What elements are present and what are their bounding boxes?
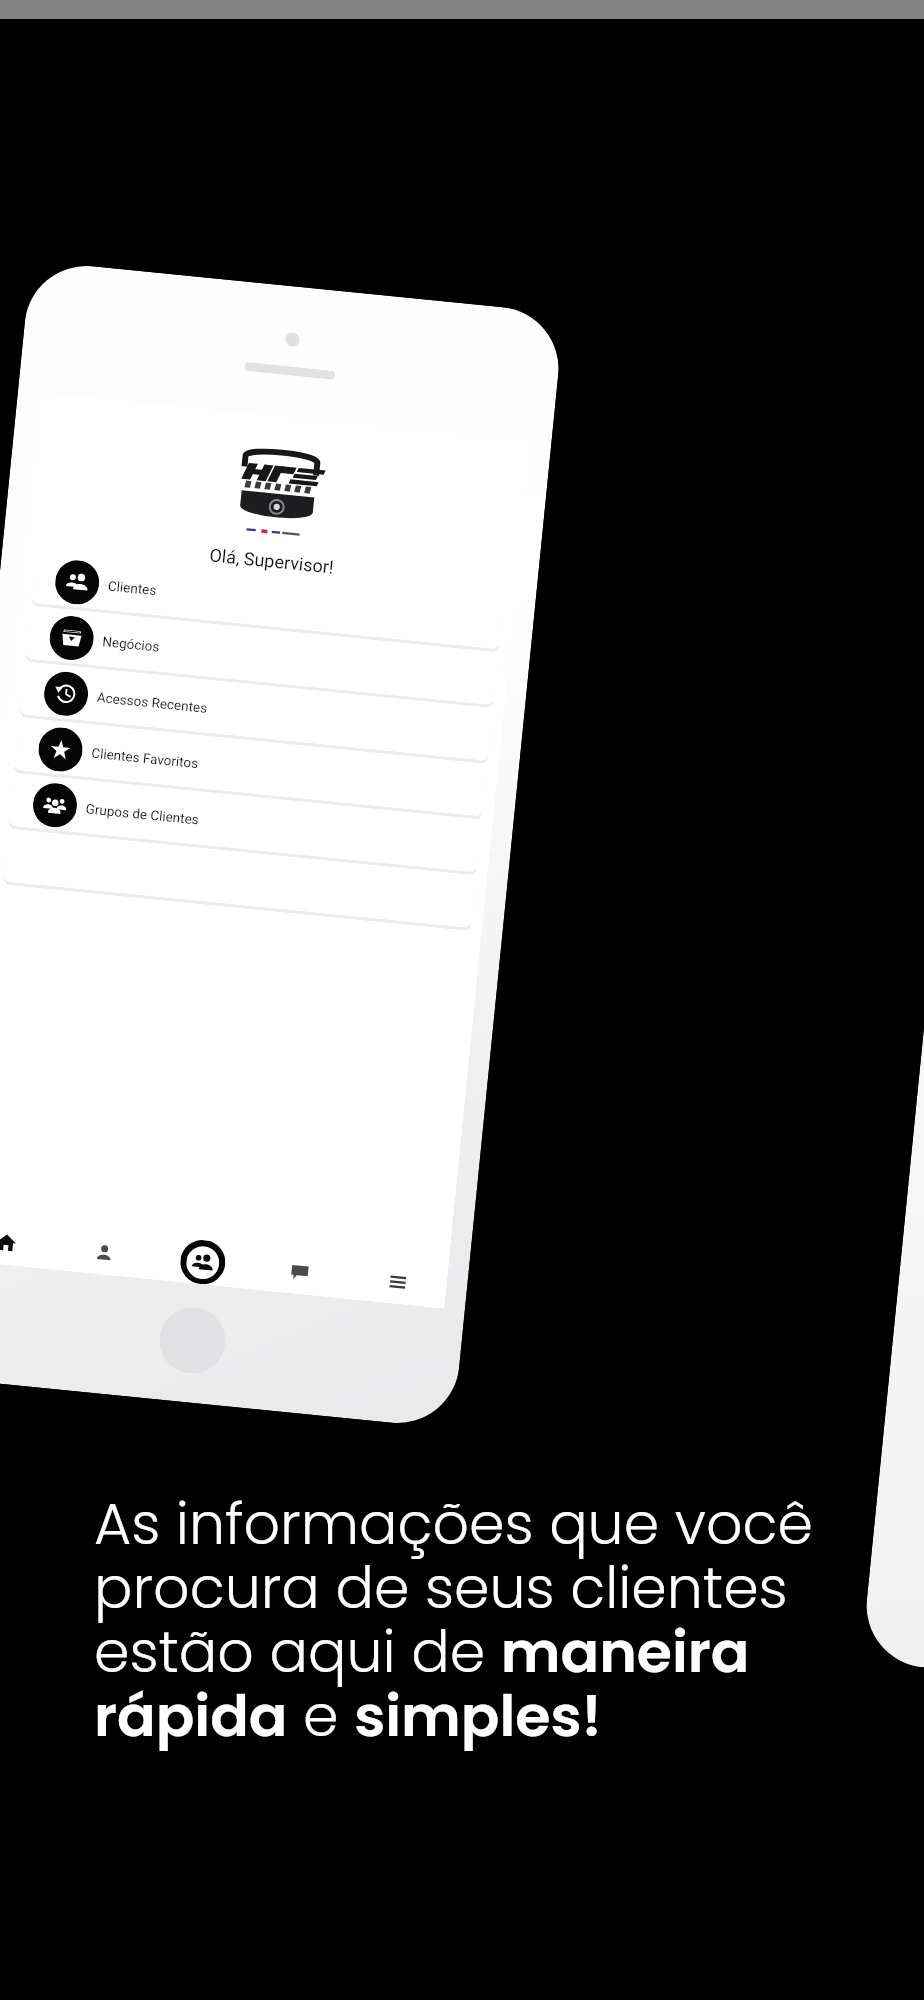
- staticText: Clientes Favoritos: [91, 745, 200, 771]
- button[interactable]: [3, 831, 476, 928]
- button[interactable]: Negócios: [25, 608, 498, 705]
- button[interactable]: Grupos de Clientes: [9, 775, 481, 872]
- staticText: As informações que você procura de seus …: [94, 1484, 834, 1756]
- button[interactable]: Início: [0, 1216, 57, 1269]
- staticText: Olá, Supervisor!: [209, 544, 335, 578]
- button[interactable]: Clientes: [151, 1235, 253, 1289]
- button[interactable]: Acessos Recentes: [20, 663, 492, 761]
- staticText: Negócios: [102, 633, 161, 655]
- button[interactable]: Mensagens: [249, 1245, 351, 1299]
- button[interactable]: Clientes Favoritos: [14, 719, 487, 817]
- button[interactable]: Menu: [346, 1255, 448, 1308]
- button[interactable]: Perfil: [53, 1225, 156, 1279]
- button[interactable]: Clientes: [31, 552, 504, 649]
- staticText: Grupos de Clientes: [85, 800, 200, 827]
- staticText: Clientes: [107, 577, 158, 598]
- staticText: Acessos Recentes: [96, 689, 208, 716]
